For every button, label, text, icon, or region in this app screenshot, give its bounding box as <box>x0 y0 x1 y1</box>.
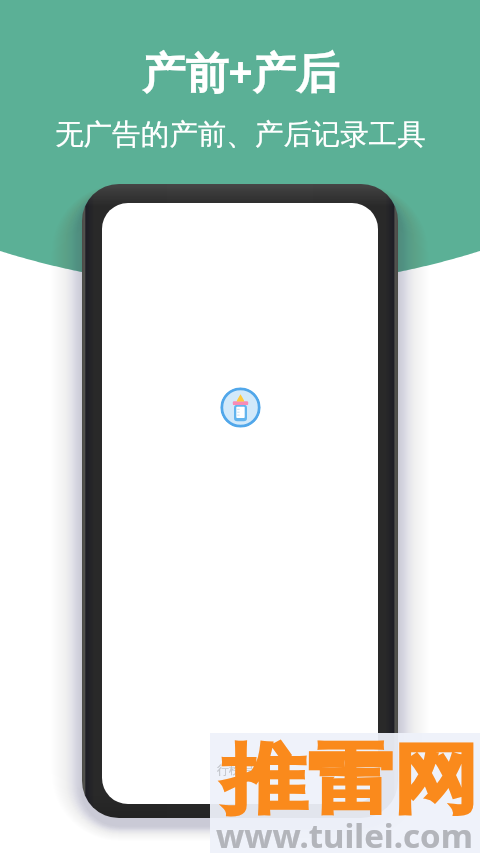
staticText: 推雷网 <box>222 733 478 828</box>
button[interactable]: Baby bottle app icon <box>220 387 261 428</box>
staticText: www.tuilei.com <box>216 813 473 853</box>
staticText: 产前+产后 <box>142 42 339 101</box>
staticText: 行榜启动 <box>217 762 265 777</box>
staticText: 无广告的产前、产后记录工具 <box>55 117 426 153</box>
